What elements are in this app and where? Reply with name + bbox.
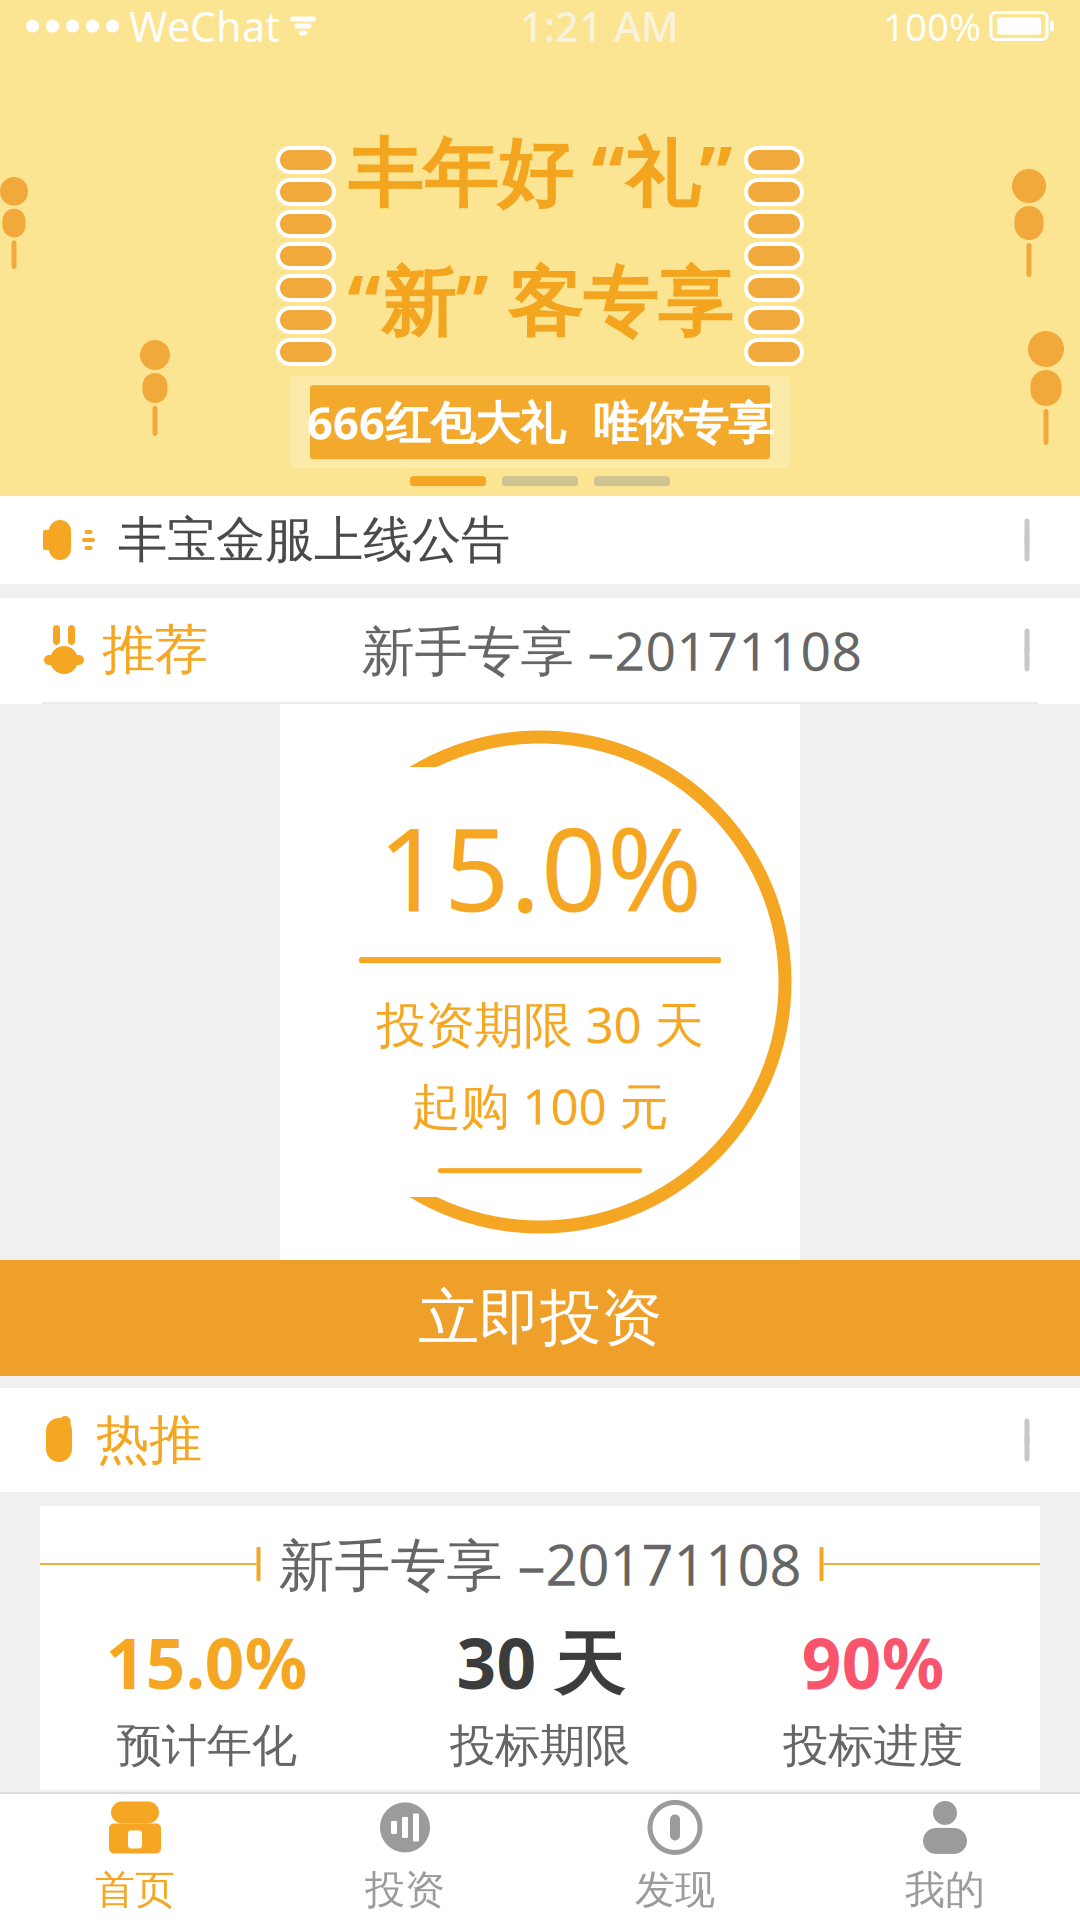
staticText: 新手专享 –20171108 <box>361 615 862 685</box>
button[interactable]: 丰宝金服上线公告 <box>0 496 1080 584</box>
staticText: 15.0% <box>378 791 702 943</box>
staticText: 15.0% <box>106 1616 308 1708</box>
staticText: 丰年好 “礼” <box>347 122 732 221</box>
staticText: 推荐 <box>102 617 208 683</box>
staticText: 投资 <box>365 1865 445 1914</box>
staticText: 666红包大礼 唯你专享 <box>307 392 773 452</box>
staticText: 预计年化 <box>117 1718 297 1774</box>
button[interactable]: 丰年好礼 新客专享 活动横幅 <box>0 52 1080 496</box>
button[interactable]: 新手专享 –20171108 <box>0 1506 1080 1790</box>
staticText: WeChat <box>129 0 280 53</box>
staticText: 新手专享 –20171108 <box>278 1527 801 1601</box>
staticText: 丰宝金服上线公告 <box>118 510 510 570</box>
button[interactable]: 投资 <box>270 1794 540 1920</box>
staticText: 1:21 AM <box>520 0 679 53</box>
staticText: 发现 <box>635 1865 715 1914</box>
staticText: 100% <box>883 0 981 52</box>
button[interactable]: 推荐 <box>0 598 1080 704</box>
staticText: 我的 <box>905 1865 985 1914</box>
button[interactable]: 发现 <box>540 1794 810 1920</box>
button[interactable]: 我的 <box>810 1794 1080 1920</box>
staticText: 热推 <box>96 1407 202 1473</box>
staticText: 投标进度 <box>783 1718 963 1774</box>
button[interactable]: 首页 <box>0 1794 270 1920</box>
staticText: 90% <box>802 1616 945 1708</box>
staticText: “新” 客专享 <box>347 251 732 350</box>
staticText: 起购 100 元 <box>411 1073 668 1138</box>
staticText: 30 天 <box>456 1616 623 1708</box>
staticText: 首页 <box>95 1865 175 1914</box>
button[interactable]: 立即投资 <box>0 1260 1080 1376</box>
staticText: 立即投资 <box>418 1280 662 1356</box>
button[interactable]: 热推 <box>0 1388 1080 1492</box>
staticText: 投资期限 30 天 <box>376 991 703 1057</box>
staticText: 投标期限 <box>450 1718 630 1774</box>
